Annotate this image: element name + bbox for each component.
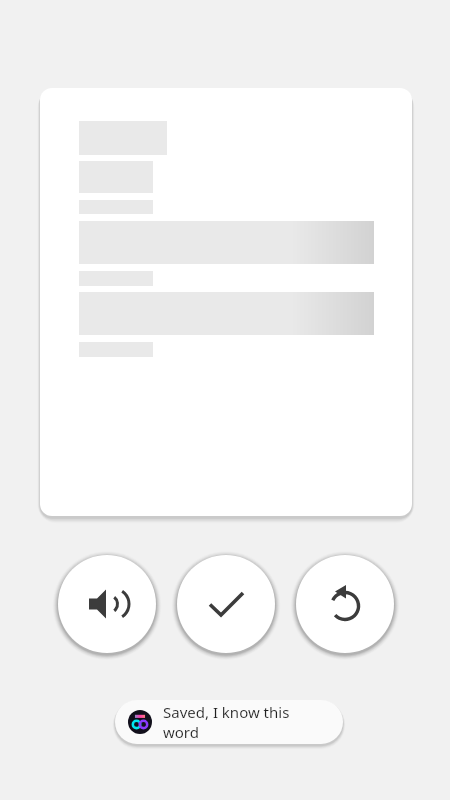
button[interactable]: I know this word [177,555,275,653]
staticText: Saved, I know this word [163,702,327,742]
button[interactable] [40,88,412,516]
button[interactable]: Saved, I know this word [115,700,343,744]
button[interactable]: Play pronunciation [58,555,156,653]
button[interactable]: Repeat [296,555,394,653]
